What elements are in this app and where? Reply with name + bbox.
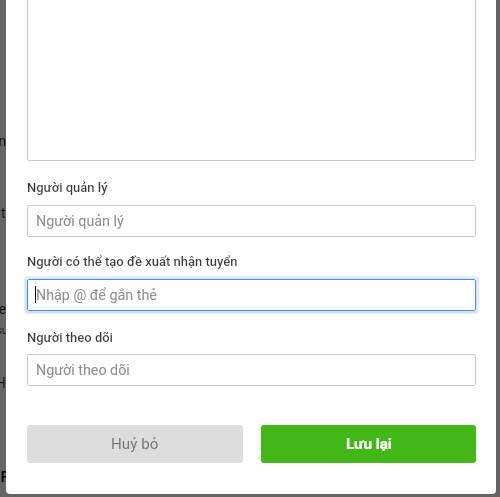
button[interactable]: Người quản lý: [27, 205, 476, 237]
staticText: Nhập @ để gắn thẻ: [36, 287, 157, 304]
staticText: Huỷ bỏ: [111, 435, 159, 453]
staticText: Người quản lý: [36, 213, 124, 230]
staticText: viên F: [0, 469, 9, 485]
staticText: Người theo dõi: [27, 330, 113, 345]
staticText: Lưu lại: [346, 435, 392, 453]
staticText: mục su: [0, 324, 8, 337]
staticText: bởi H: [0, 375, 6, 391]
staticText: Người có thể tạo đề xuất nhận tuyển: [27, 254, 238, 269]
button[interactable]: Người theo dõi: [27, 354, 476, 386]
staticText: Người theo dõi: [36, 362, 130, 379]
staticText: Người quản lý: [27, 180, 108, 195]
staticText: tuyển n: [0, 133, 7, 149]
staticText: Nguồn e: [0, 301, 7, 317]
staticText: Trạng t: [0, 205, 6, 221]
button[interactable]: Huỷ bỏ: [27, 425, 243, 463]
button[interactable]: Lưu lại: [261, 425, 476, 463]
button[interactable]: Nhập @ để gắn thẻ: [27, 279, 476, 311]
button[interactable]: Mô tả công việc: [27, 0, 476, 161]
